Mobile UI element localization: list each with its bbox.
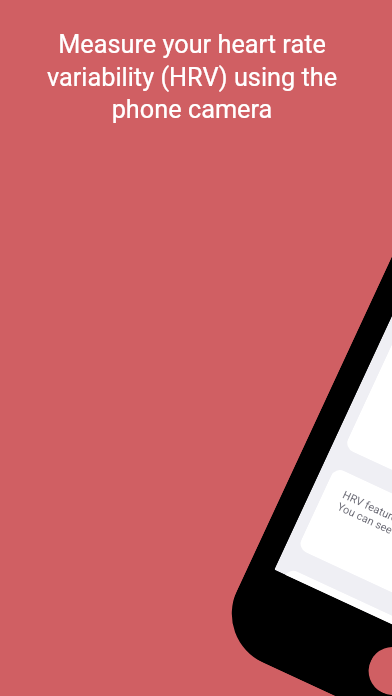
staticText: HRV feature is here! [338,488,392,540]
button[interactable] [342,320,392,561]
button[interactable]: HRV feature is here! [295,466,392,661]
button[interactable] [283,567,392,688]
staticText: You can see your HRV now [333,500,392,567]
staticText: Measure your heart rate variability (HRV… [37,30,347,124]
